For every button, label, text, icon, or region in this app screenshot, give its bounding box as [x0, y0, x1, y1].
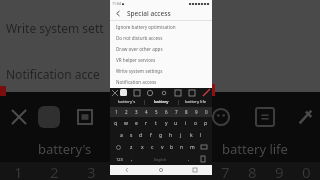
staticText: v: [161, 144, 164, 151]
button[interactable]: .: [184, 153, 194, 165]
staticText: 2: [125, 109, 128, 115]
button[interactable]: Themes: [134, 90, 140, 96]
staticText: 123: [116, 157, 123, 162]
staticText: r: [145, 120, 148, 127]
staticText: .: [188, 156, 190, 163]
button[interactable]: Voice input: [194, 153, 211, 165]
button[interactable]: 4: [141, 107, 151, 117]
button[interactable]: Pin: [203, 89, 210, 96]
button[interactable]: k: [186, 129, 196, 141]
staticText: z: [130, 144, 133, 151]
staticText: d: [139, 132, 143, 139]
button[interactable]: Draw over other apps: [110, 43, 212, 54]
staticText: 3: [87, 162, 96, 180]
button[interactable]: Settings: [161, 90, 167, 96]
button[interactable]: Home: [144, 165, 178, 175]
button[interactable]: g: [156, 129, 166, 141]
button[interactable]: p: [201, 117, 211, 129]
staticText: English: [154, 157, 167, 162]
button[interactable]: w: [121, 117, 131, 129]
staticText: Ignore battery optimisation: [116, 24, 176, 30]
button[interactable]: English: [136, 153, 184, 165]
staticText: Draw over other apps: [116, 46, 163, 52]
button[interactable]: j: [176, 129, 186, 141]
staticText: battery life: [222, 140, 288, 158]
button[interactable]: Back: [110, 165, 144, 175]
button[interactable]: Ignore battery optimisation: [110, 21, 212, 32]
button[interactable]: a: [116, 129, 126, 141]
button[interactable]: s: [126, 129, 136, 141]
button[interactable]: i: [181, 117, 191, 129]
button[interactable]: Backspace: [197, 141, 211, 153]
button[interactable]: App: [120, 89, 127, 96]
button[interactable]: Close: [112, 90, 118, 96]
button[interactable]: v: [157, 141, 167, 153]
button[interactable]: ,: [127, 153, 136, 165]
button[interactable]: z: [126, 141, 137, 153]
button[interactable]: Sticker: [147, 90, 153, 96]
button[interactable]: Notification access: [110, 76, 212, 87]
button[interactable]: o: [191, 117, 201, 129]
staticText: e: [135, 120, 138, 127]
staticText: u: [174, 120, 178, 127]
staticText: q: [114, 120, 118, 127]
button[interactable]: VR helper services: [110, 54, 212, 65]
button[interactable]: 2: [121, 107, 131, 117]
button[interactable]: c: [147, 141, 157, 153]
staticText: p: [204, 120, 208, 127]
staticText: Write system settings: [116, 68, 163, 74]
button[interactable]: 0: [201, 107, 211, 117]
button[interactable]: battery: [145, 97, 178, 107]
button[interactable]: u: [171, 117, 181, 129]
button[interactable]: x: [137, 141, 147, 153]
button[interactable]: n: [177, 141, 187, 153]
button[interactable]: Back: [110, 7, 212, 20]
staticText: l: [200, 132, 202, 139]
staticText: w: [124, 120, 128, 127]
button[interactable]: 9: [191, 107, 201, 117]
button[interactable]: m: [187, 141, 197, 153]
button[interactable]: Clipboard: [175, 90, 181, 96]
button[interactable]: h: [166, 129, 176, 141]
button[interactable]: Shift: [111, 141, 126, 153]
staticText: s: [130, 132, 133, 139]
button[interactable]: t: [151, 117, 161, 129]
staticText: x: [141, 144, 144, 151]
staticText: 2: [50, 162, 59, 180]
button[interactable]: l: [196, 129, 206, 141]
button[interactable]: 123: [111, 153, 127, 165]
button[interactable]: r: [141, 117, 151, 129]
staticText: Notification access: [116, 79, 157, 85]
staticText: h: [169, 132, 173, 139]
button[interactable]: 7: [171, 107, 181, 117]
staticText: f: [150, 132, 152, 139]
button[interactable]: Write system settings: [110, 65, 212, 76]
staticText: 5: [155, 109, 158, 115]
staticText: 1: [115, 109, 118, 115]
staticText: 0: [205, 109, 208, 115]
button[interactable]: battery life: [179, 97, 212, 107]
button[interactable]: 1: [111, 107, 121, 117]
staticText: ,: [131, 156, 133, 163]
staticText: j: [180, 132, 182, 139]
button[interactable]: 3: [131, 107, 141, 117]
staticText: battery's: [118, 99, 136, 105]
button[interactable]: d: [136, 129, 146, 141]
button[interactable]: 5: [151, 107, 161, 117]
button[interactable]: battery's: [110, 97, 144, 107]
button[interactable]: Back: [114, 9, 123, 18]
button[interactable]: q: [111, 117, 121, 129]
button[interactable]: y: [161, 117, 171, 129]
staticText: c: [151, 144, 154, 151]
button[interactable]: Do not disturb access: [110, 32, 212, 43]
button[interactable]: e: [131, 117, 141, 129]
button[interactable]: 6: [161, 107, 171, 117]
button[interactable]: b: [167, 141, 177, 153]
button[interactable]: Recents: [178, 165, 212, 175]
button[interactable]: 8: [181, 107, 191, 117]
button[interactable]: f: [146, 129, 156, 141]
button[interactable]: More: [189, 90, 195, 96]
staticText: m: [190, 144, 195, 151]
staticText: 9: [195, 109, 198, 115]
staticText: battery: [154, 99, 169, 105]
